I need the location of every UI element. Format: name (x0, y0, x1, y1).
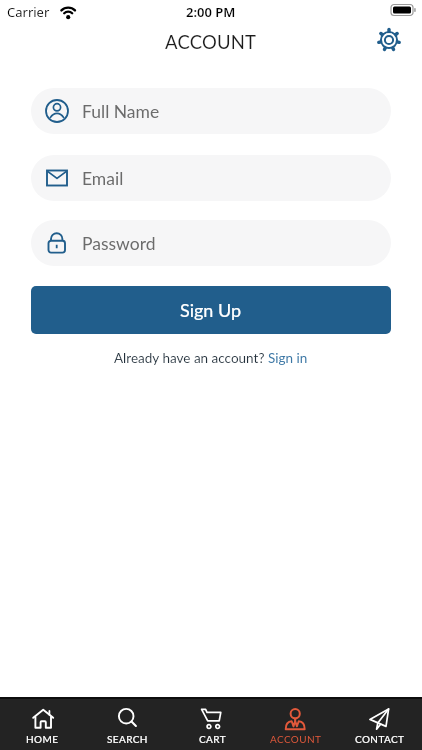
button[interactable]: CONTACT (338, 699, 422, 750)
staticText: CART (199, 733, 226, 745)
button[interactable] (377, 28, 401, 52)
staticText: Password (82, 233, 156, 254)
button[interactable]: Password (31, 220, 391, 266)
staticText: ACCOUNT (270, 733, 322, 745)
staticText: Sign Up (180, 299, 242, 321)
staticText: SEARCH (107, 733, 148, 745)
button[interactable]: Email (31, 155, 391, 201)
staticText: Already have an account? (114, 350, 268, 366)
staticText: CONTACT (355, 733, 405, 745)
staticText: 2:00 PM (186, 3, 236, 21)
button[interactable]: Sign Up (31, 286, 391, 334)
button[interactable]: ACCOUNT (254, 699, 338, 750)
staticText: Email (82, 168, 124, 189)
staticText: Carrier (7, 3, 50, 21)
button[interactable]: CART (170, 699, 254, 750)
button[interactable]: SEARCH (85, 699, 170, 750)
staticText: Full Name (82, 101, 160, 122)
button[interactable]: HOME (0, 699, 85, 750)
button[interactable]: Sign in (268, 350, 308, 366)
staticText: HOME (26, 733, 59, 745)
staticText: ACCOUNT (165, 31, 257, 53)
button[interactable]: Full Name (31, 88, 391, 134)
